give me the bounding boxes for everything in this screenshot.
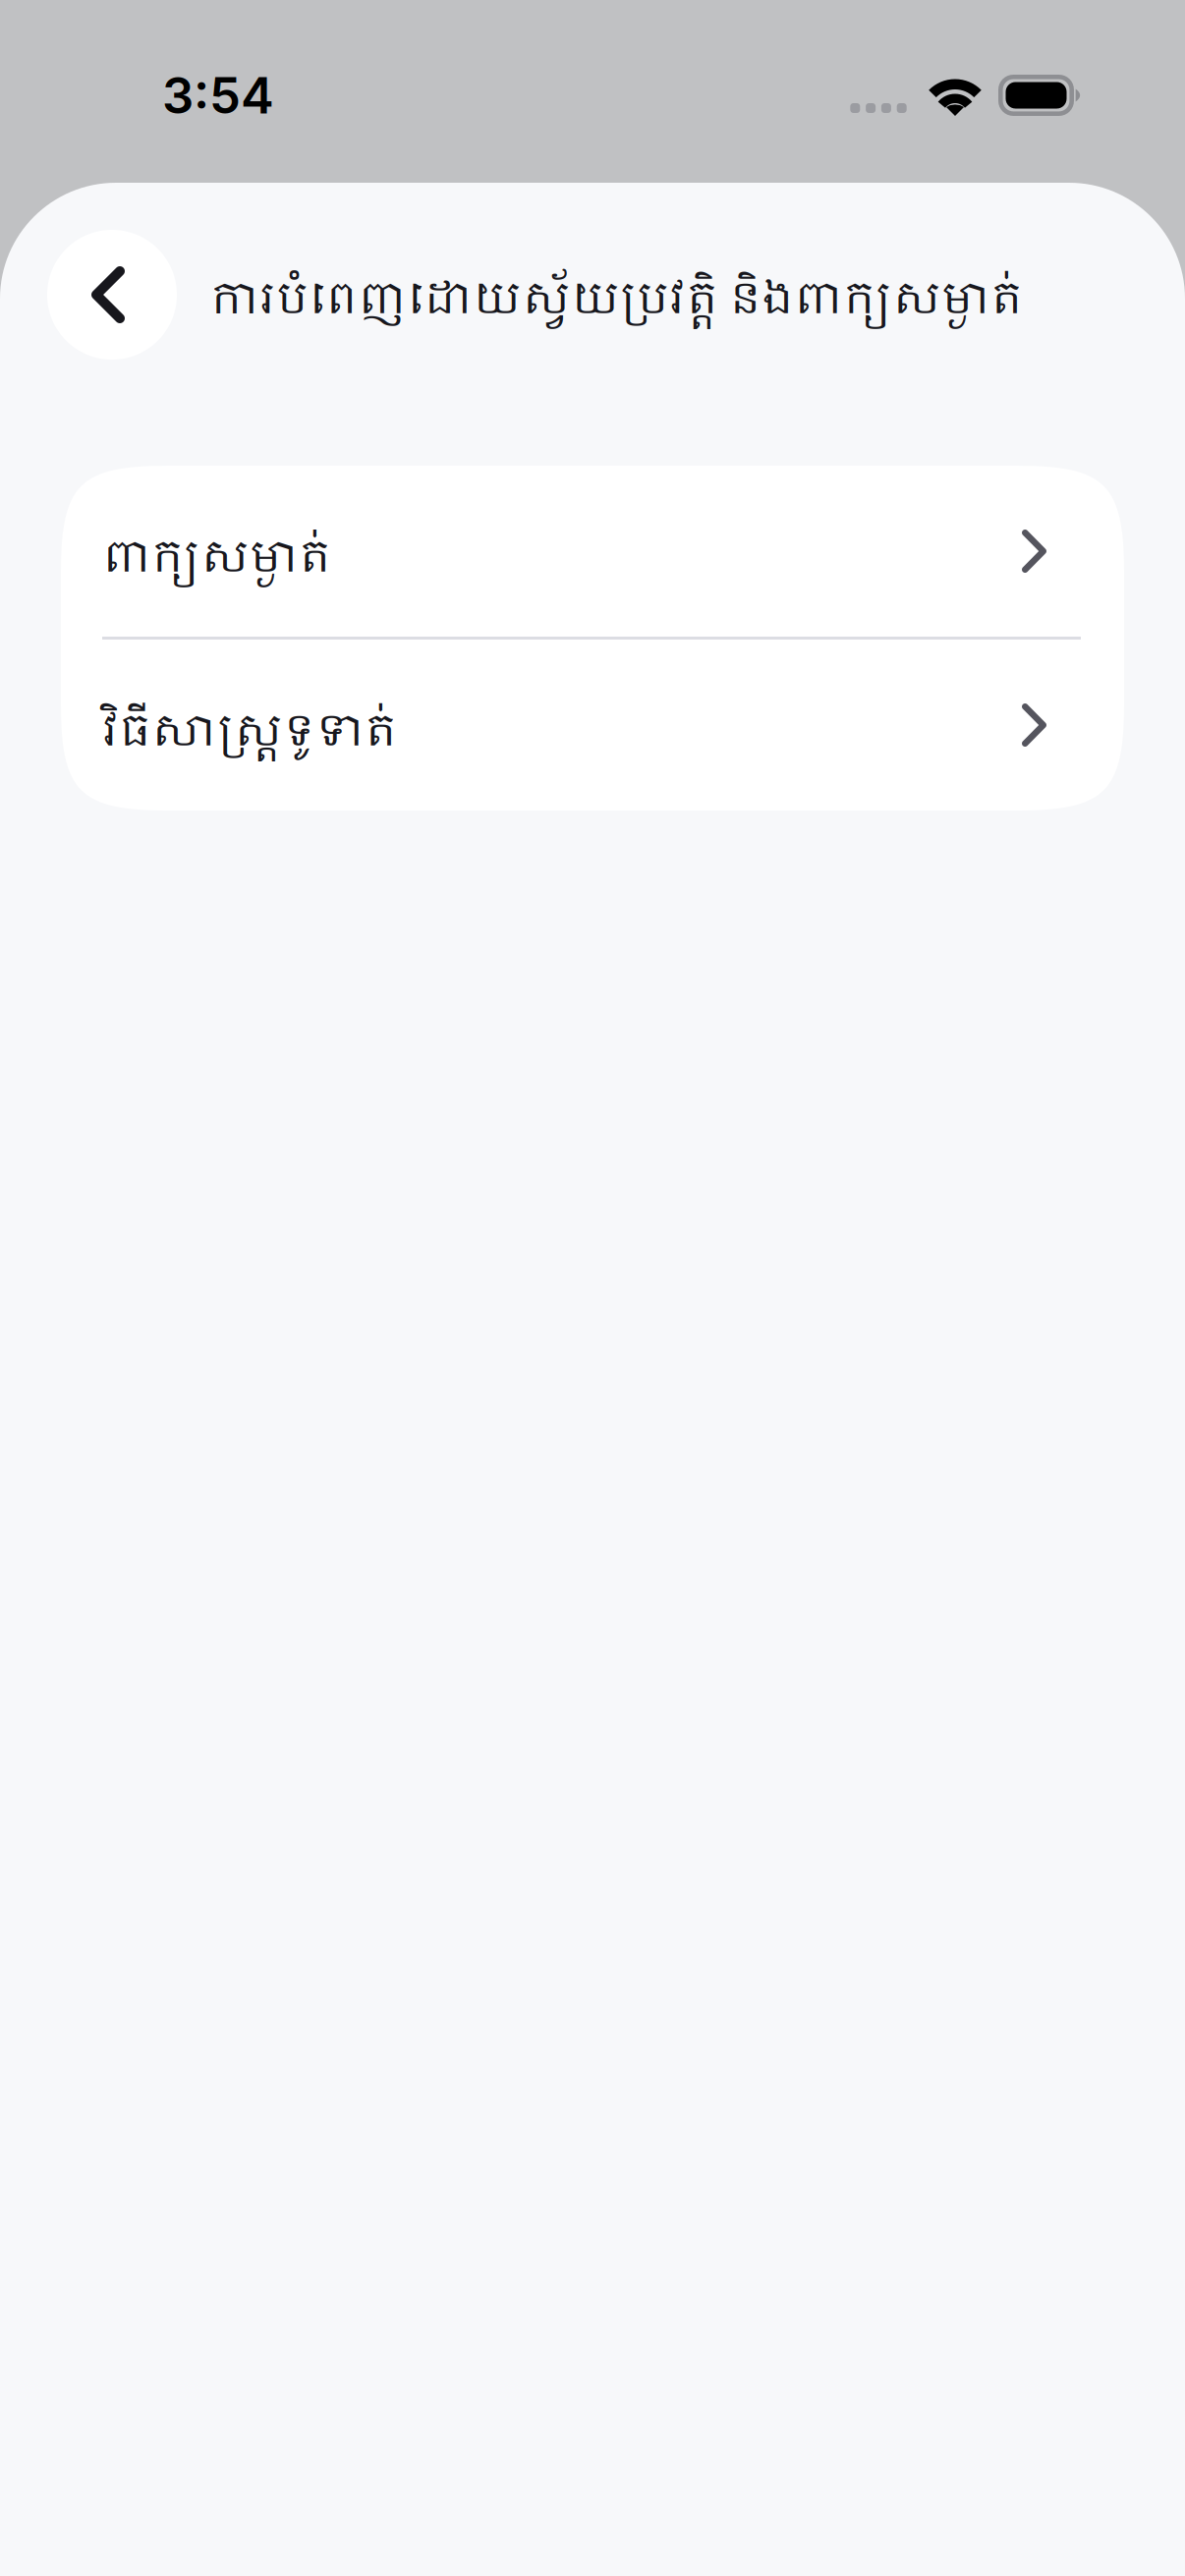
staticText: វិធីសាស្ត្រទូទាត់ <box>102 697 397 771</box>
staticText: ពាក្យសម្ងាត់ <box>102 523 331 597</box>
button[interactable]: ពាក្យសម្ងាត់ <box>61 466 1124 637</box>
button[interactable]: Back <box>47 230 177 360</box>
staticText: 3:54 <box>162 65 274 125</box>
button[interactable]: វិធីសាស្ត្រទូទាត់ <box>61 640 1124 811</box>
staticText: ការបំពេញដោយស្វ័យប្រវត្តិ និងពាក្យសម្ងាត់ <box>210 265 1023 339</box>
